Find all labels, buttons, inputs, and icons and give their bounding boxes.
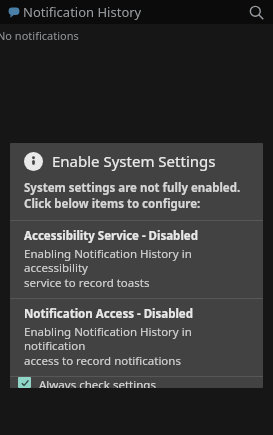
- staticText: access to record notifications: [24, 353, 181, 369]
- staticText: Notification History: [23, 3, 142, 21]
- button[interactable]: Accessibility Service - Disabled: [10, 221, 263, 298]
- staticText: System settings are not fully enabled.: [24, 180, 241, 196]
- button[interactable]: Always check settings: [10, 377, 263, 388]
- staticText: No notifications: [0, 28, 79, 43]
- button[interactable]: Search: [245, 1, 267, 23]
- staticText: Accessibility Service - Disabled: [24, 228, 198, 244]
- staticText: Notification Access - Disabled: [24, 306, 193, 322]
- staticText: Click below items to configure:: [24, 196, 201, 212]
- staticText: Enabling Notification History in accessi…: [24, 246, 255, 275]
- staticText: Enabling Notification History in notific…: [24, 324, 255, 353]
- staticText: Enable System Settings: [52, 151, 216, 171]
- staticText: service to record toasts: [24, 275, 150, 291]
- button[interactable]: Notification Access - Disabled: [10, 299, 263, 376]
- staticText: Always check settings: [39, 377, 156, 388]
